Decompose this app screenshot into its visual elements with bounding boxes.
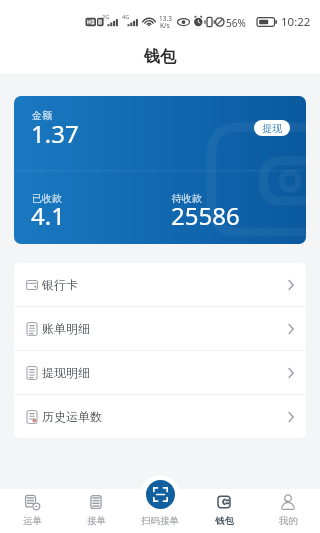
staticText: 银行卡 xyxy=(42,277,78,292)
button[interactable]: 我的 xyxy=(256,489,320,533)
button[interactable]: 扫码接单 xyxy=(146,480,175,509)
staticText: 钱包 xyxy=(215,515,234,527)
staticText: 运单 xyxy=(23,515,42,527)
staticText: 4.1 xyxy=(31,199,65,232)
staticText: 1.37 xyxy=(31,117,79,150)
staticText: 25586 xyxy=(171,199,240,232)
staticText: 扫码接单 xyxy=(141,515,179,527)
button[interactable]: 钱包 xyxy=(192,489,256,533)
staticText: 13.3 xyxy=(159,14,172,23)
button[interactable]: 银行卡 xyxy=(14,263,306,306)
staticText: 钱包 xyxy=(144,47,176,67)
staticText: 提现 xyxy=(262,122,282,135)
staticText: 历史运单数 xyxy=(42,409,102,424)
staticText: 我的 xyxy=(279,515,298,527)
button[interactable]: 提现 xyxy=(254,120,290,136)
button[interactable]: 运单 xyxy=(0,489,64,533)
staticText: 待收款 xyxy=(172,192,202,205)
staticText: 金额 xyxy=(32,109,52,122)
staticText: 接单 xyxy=(87,515,106,527)
staticText: K/s xyxy=(160,21,170,30)
staticText: 10:22 xyxy=(281,14,311,30)
button[interactable]: 账单明细 xyxy=(14,307,306,350)
button[interactable]: 提现明细 xyxy=(14,351,306,394)
staticText: 账单明细 xyxy=(42,321,90,336)
staticText: 提现明细 xyxy=(42,365,90,380)
button[interactable]: 接单 xyxy=(64,489,128,533)
staticText: 56% xyxy=(226,16,246,30)
button[interactable]: 历史运单数 xyxy=(14,395,306,438)
staticText: 已收款 xyxy=(32,192,62,205)
staticText: 4G xyxy=(122,13,130,20)
staticText: 2G xyxy=(102,13,110,20)
